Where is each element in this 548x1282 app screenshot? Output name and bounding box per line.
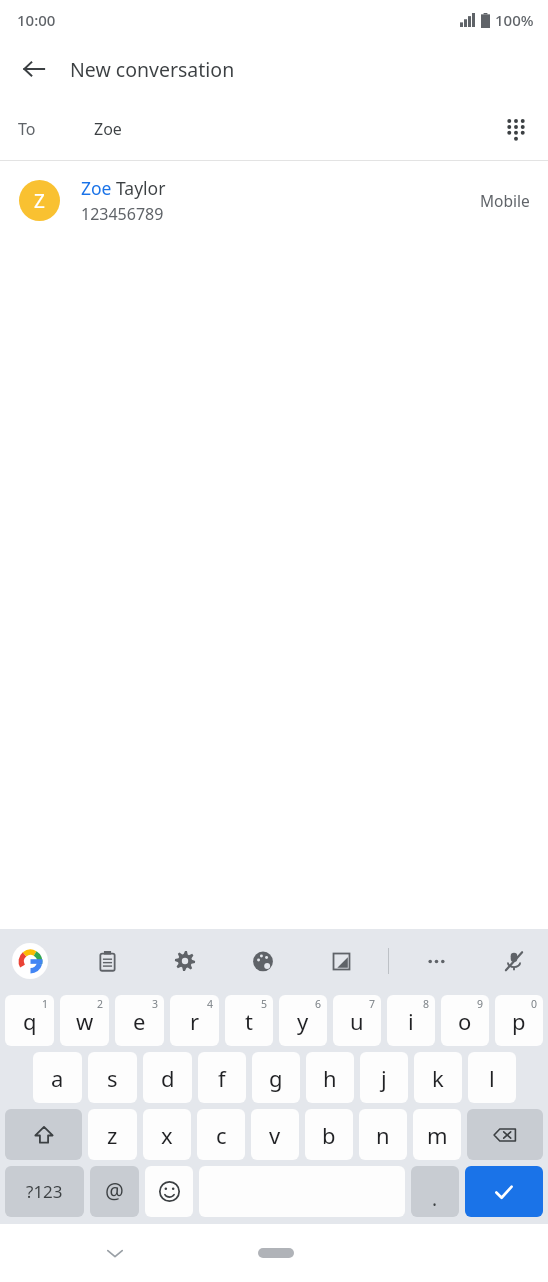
staticText: d [161,1063,175,1093]
staticText: n [376,1120,390,1150]
staticText: j [381,1063,387,1093]
button[interactable]: c [197,1109,245,1160]
button[interactable]: e [115,995,164,1046]
button[interactable]: l [468,1052,516,1103]
staticText: y [297,1006,309,1036]
button[interactable]: f [198,1052,246,1103]
staticText: q [23,1006,37,1036]
button[interactable]: Shift [5,1109,82,1160]
button[interactable]: Resize keyboard [321,941,361,981]
staticText: 100% [495,10,534,30]
button[interactable]: h [306,1052,354,1103]
staticText: p [512,1006,526,1036]
button[interactable]: At sign [90,1166,139,1217]
button[interactable]: Send [465,1166,543,1217]
button[interactable]: a [33,1052,82,1103]
button[interactable]: Period [411,1166,459,1217]
button[interactable]: Google search [12,943,48,979]
staticText: t [245,1006,253,1036]
staticText: z [107,1120,118,1150]
staticText: r [190,1006,200,1036]
button[interactable]: j [360,1052,408,1103]
staticText: Z [34,188,45,214]
button[interactable]: More options [416,941,456,981]
staticText: . [432,1186,438,1212]
staticText: 4 [207,997,214,1011]
staticText: s [107,1063,118,1093]
button[interactable]: r [170,995,219,1046]
staticText: 0 [531,997,538,1011]
staticText: Zoe [94,118,122,140]
staticText: v [269,1120,281,1150]
staticText: @ [105,1177,124,1206]
button[interactable]: i [387,995,435,1046]
staticText: 7 [369,997,376,1011]
staticText: e [133,1006,146,1036]
staticText: g [269,1063,283,1093]
staticText: u [350,1006,364,1036]
staticText: l [489,1063,495,1093]
staticText: a [51,1063,64,1093]
button[interactable] [258,1248,294,1258]
button[interactable]: g [252,1052,300,1103]
staticText: ?123 [26,1180,63,1203]
staticText: 8 [423,997,430,1011]
staticText: m [427,1120,448,1150]
staticText: 9 [477,997,484,1011]
button[interactable]: s [88,1052,137,1103]
staticText: 10:00 [17,10,56,30]
button[interactable]: k [414,1052,462,1103]
staticText: w [76,1006,94,1036]
button[interactable]: Emoji [145,1166,193,1217]
button[interactable]: Voice input off [494,941,534,981]
staticText: Zoe Taylor [81,176,166,200]
staticText: o [458,1006,472,1036]
button[interactable]: t [225,995,273,1046]
staticText: 5 [261,997,268,1011]
button[interactable]: Back [10,45,58,93]
staticText: To [18,118,36,140]
button[interactable]: Z [0,161,548,239]
button[interactable]: Dialpad [492,105,540,153]
button[interactable]: d [143,1052,192,1103]
button[interactable]: o [441,995,489,1046]
button[interactable]: Hide keyboard [94,1232,136,1274]
staticText: k [432,1063,444,1093]
button[interactable]: m [413,1109,461,1160]
button[interactable]: Clipboard [87,941,127,981]
button[interactable]: y [279,995,327,1046]
staticText: c [216,1120,227,1150]
staticText: New conversation [70,56,235,83]
button[interactable]: b [305,1109,353,1160]
button[interactable]: Themes [243,941,283,981]
staticText: x [161,1120,173,1150]
staticText: b [322,1120,336,1150]
staticText: 123456789 [81,203,164,225]
staticText: 6 [315,997,322,1011]
staticText: Mobile [480,190,530,211]
staticText: 2 [97,997,104,1011]
button[interactable]: p [495,995,543,1046]
button[interactable]: q [5,995,54,1046]
staticText: 1 [42,997,49,1011]
button[interactable]: To [0,98,548,160]
button[interactable]: n [359,1109,407,1160]
staticText: i [408,1006,414,1036]
button[interactable]: u [333,995,381,1046]
button[interactable]: z [88,1109,137,1160]
staticText: f [218,1063,226,1093]
staticText: 3 [152,997,159,1011]
button[interactable]: w [60,995,109,1046]
button[interactable]: ?123 [5,1166,84,1217]
button[interactable]: Settings [165,941,205,981]
button[interactable]: Backspace [467,1109,543,1160]
button[interactable]: x [143,1109,191,1160]
staticText: h [323,1063,337,1093]
button[interactable]: v [251,1109,299,1160]
